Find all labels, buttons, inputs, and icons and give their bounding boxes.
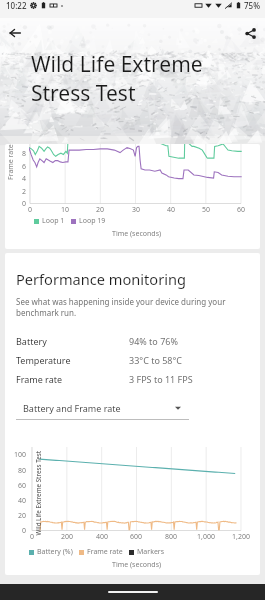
staticText: Temperature [16, 354, 71, 366]
button[interactable]: Back [0, 18, 30, 48]
staticText: 4 [22, 174, 27, 183]
staticText: 0 [28, 205, 33, 215]
staticText: 0 [22, 199, 27, 208]
staticText: Frame rate [87, 547, 123, 557]
staticText: 1,200 [232, 532, 250, 542]
staticText: 200 [61, 532, 74, 542]
staticText: Battery and Frame rate [23, 402, 121, 414]
staticText: 40 [18, 496, 27, 505]
staticText: Loop 19 [79, 216, 106, 226]
staticText: 33°C to 58°C [129, 354, 183, 366]
staticText: 400 [96, 532, 109, 542]
staticText: 60 [237, 205, 246, 215]
staticText: Wild Life Extreme [31, 50, 203, 79]
staticText: Stress Test [31, 79, 136, 108]
staticText: Markers [137, 547, 165, 557]
staticText: Frame rate [16, 373, 62, 385]
staticText: Battery (%) [37, 547, 73, 557]
staticText: 0 [30, 532, 35, 542]
staticText: 20 [96, 205, 105, 215]
staticText: 8 [22, 149, 27, 158]
staticText: 80 [18, 466, 27, 475]
staticText: See what was happening inside your devic… [16, 296, 249, 318]
staticText: 75% [244, 0, 260, 11]
staticText: 2 [22, 187, 27, 196]
staticText: Time (seconds) [112, 229, 162, 239]
staticText: 20 [18, 511, 27, 520]
staticText: 40 [167, 205, 176, 215]
staticText: Wild Life Extreme Stress Test [33, 450, 41, 535]
staticText: 6 [22, 162, 27, 171]
button[interactable]: Battery and Frame rate [16, 397, 189, 420]
staticText: 800 [165, 532, 178, 542]
staticText: 3 FPS to 11 FPS [129, 373, 193, 385]
button[interactable]: Share [235, 18, 265, 48]
staticText: Frame rate [6, 144, 16, 180]
staticText: 100 [14, 450, 27, 459]
staticText: Loop 1 [42, 216, 65, 226]
staticText: 0 [22, 526, 27, 535]
staticText: 50 [202, 205, 211, 215]
staticText: Performance monitoring [16, 269, 186, 289]
staticText: 1,000 [197, 532, 215, 542]
staticText: 60 [18, 481, 27, 490]
staticText: 94% to 76% [129, 335, 178, 347]
staticText: 10 [61, 205, 70, 215]
staticText: Time (seconds) [112, 560, 162, 570]
staticText: 600 [130, 532, 143, 542]
staticText: 30 [132, 205, 141, 215]
staticText: 10:22 [6, 0, 27, 11]
staticText: Battery [16, 335, 47, 347]
